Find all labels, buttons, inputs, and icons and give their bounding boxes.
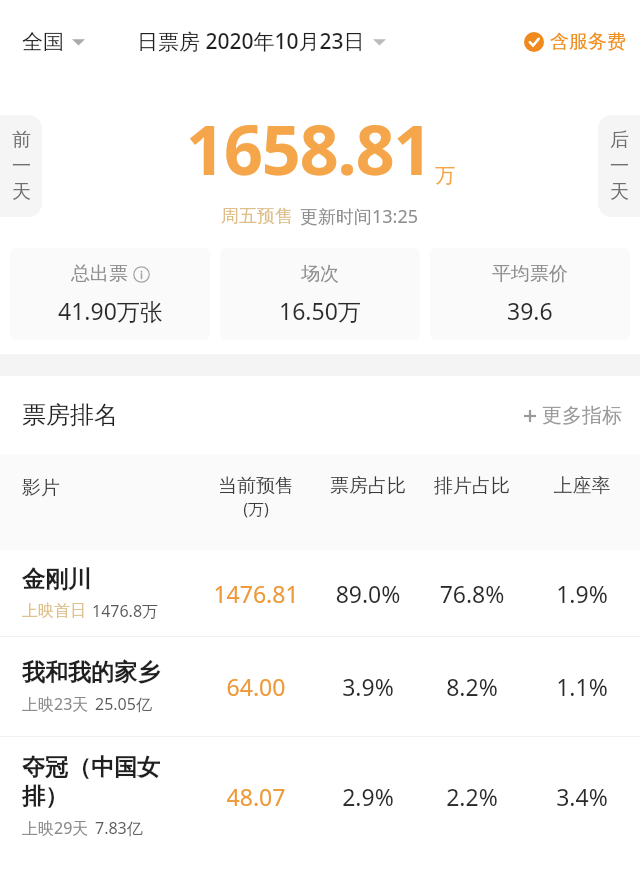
staticText: 1476.8万 — [92, 600, 159, 622]
staticText: 排片占比 — [414, 474, 530, 498]
staticText: 39.6 — [507, 295, 553, 326]
staticText: 48.07 — [196, 781, 316, 812]
staticText: 1.1% — [534, 671, 630, 702]
staticText: 16.50万 — [279, 295, 361, 326]
button[interactable]: 平均票价 — [430, 248, 630, 340]
staticText: 25.05亿 — [95, 693, 152, 715]
staticText: 8.2% — [414, 671, 530, 702]
staticText: 76.8% — [414, 578, 530, 609]
staticText: 上映29天 — [22, 817, 89, 839]
staticText: 41.90万张 — [58, 295, 163, 326]
button[interactable]: 后 一 天 — [598, 115, 640, 217]
button[interactable]: 日票房 2020年10月23日 — [137, 27, 386, 56]
staticText: 含服务费 — [550, 30, 626, 54]
staticText: 2.9% — [310, 781, 426, 812]
button[interactable]: 我和我的家乡 — [0, 637, 640, 736]
staticText: 89.0% — [310, 578, 426, 609]
staticText: 后 一 天 — [610, 128, 629, 204]
staticText: 我和我的家乡 — [22, 658, 160, 687]
staticText: 日票房 2020年10月23日 — [137, 27, 365, 56]
staticText: 总出票 — [71, 262, 128, 286]
staticText: 上座率 — [534, 474, 630, 498]
staticText: 2.2% — [414, 781, 530, 812]
staticText: 影片 — [22, 476, 60, 500]
staticText: 万 — [435, 163, 455, 188]
staticText: 3.4% — [534, 781, 630, 812]
staticText: 周五预售 — [221, 205, 293, 228]
staticText: 排） — [22, 782, 68, 811]
staticText: 票房占比 — [310, 474, 426, 498]
staticText: 7.83亿 — [95, 817, 143, 839]
staticText: 夺冠（中国女 — [22, 753, 160, 782]
staticText: 1658.81 — [186, 102, 432, 195]
staticText: 1.9% — [534, 578, 630, 609]
button[interactable]: 夺冠（中国女 — [0, 737, 640, 855]
staticText: 64.00 — [196, 671, 316, 702]
button[interactable]: 总出票 — [10, 248, 210, 340]
staticText: 当前预售 — [218, 474, 294, 498]
staticText: 全国 — [22, 29, 64, 55]
staticText: (万) — [243, 498, 269, 520]
button[interactable]: 含服务费 — [524, 30, 626, 54]
staticText: 上映23天 — [22, 693, 89, 715]
staticText: 场次 — [301, 262, 339, 286]
button[interactable]: 全国 — [22, 29, 85, 55]
staticText: 更多指标 — [542, 403, 622, 428]
staticText: 前 一 天 — [12, 128, 31, 204]
button[interactable]: 场次 — [220, 248, 420, 340]
staticText: 3.9% — [310, 671, 426, 702]
staticText: 金刚川 — [22, 565, 91, 594]
staticText: 上映首日 — [22, 601, 86, 621]
button[interactable]: 更多指标 — [522, 403, 622, 428]
staticText: 平均票价 — [492, 262, 568, 286]
staticText: 票房排名 — [22, 400, 118, 430]
button[interactable]: 金刚川 — [0, 550, 640, 636]
staticText: 1476.81 — [196, 578, 316, 609]
staticText: 更新时间13:25 — [300, 204, 419, 229]
button[interactable]: 前 一 天 — [0, 115, 42, 217]
